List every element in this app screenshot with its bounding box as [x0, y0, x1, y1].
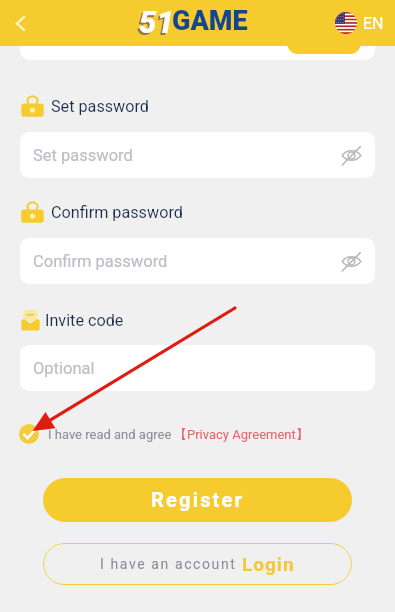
button[interactable]: Show password [339, 143, 363, 167]
button[interactable]: Register [43, 478, 352, 522]
staticText: 51 [139, 4, 174, 40]
staticText: Confirm password [33, 252, 168, 271]
staticText: Register [151, 488, 245, 511]
staticText: Confirm password [51, 203, 183, 222]
button[interactable]: I have an account [43, 543, 352, 585]
staticText: EN [363, 14, 384, 33]
staticText: 51 [137, 6, 172, 42]
staticText: Optional [33, 359, 95, 378]
staticText: GAME [172, 5, 248, 37]
staticText: I have read and agree [48, 427, 172, 442]
other: Language [335, 12, 357, 34]
other: Agree [19, 424, 39, 444]
button[interactable]: Optional [20, 345, 375, 391]
button[interactable]: Agree [19, 424, 309, 444]
button[interactable]: Show password [339, 249, 363, 273]
button[interactable]: Back [7, 10, 34, 37]
staticText: 【Privacy Agreement】 [174, 426, 309, 442]
staticText: Set password [51, 97, 149, 116]
staticText: Login [242, 553, 295, 575]
button[interactable]: Set password [20, 132, 375, 178]
button[interactable]: Language [335, 12, 384, 34]
button[interactable]: Confirm password [20, 238, 375, 284]
staticText: I have an account [100, 556, 237, 572]
staticText: Invite code [45, 311, 124, 330]
staticText: Set password [33, 146, 133, 165]
